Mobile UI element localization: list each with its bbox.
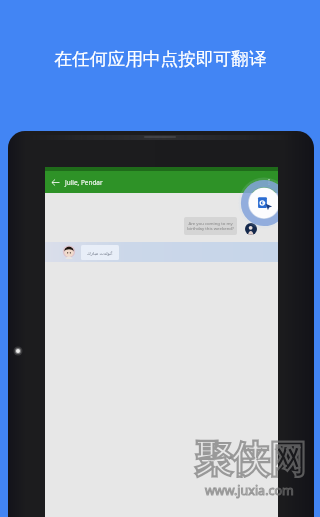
button[interactable]: Are you coming to my birthday this weeke… — [184, 217, 237, 235]
staticText: 在任何应用中点按即可翻译 — [54, 48, 267, 70]
staticText: تولدت مبارك! — [87, 250, 113, 256]
staticText: www.juxia.com — [205, 482, 294, 499]
button[interactable]: More options — [263, 176, 275, 188]
button[interactable]: Back — [49, 176, 62, 189]
button[interactable]: Tap to Translate — [238, 177, 278, 229]
button[interactable]: تولدت مبارك! — [81, 245, 119, 260]
staticText: 聚侠网 — [195, 436, 306, 483]
staticText: Are you coming to my birthday this weeke… — [187, 220, 234, 232]
staticText: Julie, Pendar — [65, 178, 103, 187]
